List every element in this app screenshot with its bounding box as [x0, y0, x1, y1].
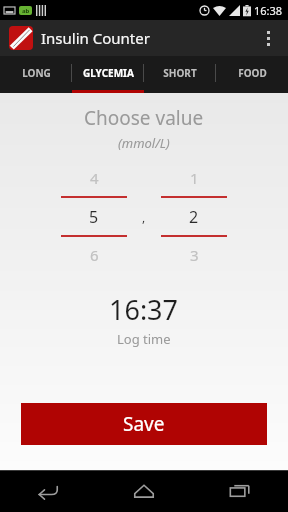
button[interactable]: More options: [254, 20, 282, 56]
button[interactable]: Recent apps: [192, 470, 288, 512]
staticText: ,: [142, 209, 146, 225]
staticText: 3: [190, 245, 199, 265]
staticText: 16:38: [254, 3, 283, 18]
staticText: 4: [90, 168, 99, 188]
staticText: ab: [22, 7, 30, 15]
staticText: Save: [123, 411, 165, 437]
staticText: LONG: [22, 66, 51, 80]
staticText: 5: [89, 206, 99, 228]
button[interactable]: SHORT: [144, 56, 216, 90]
button[interactable]: Home: [96, 470, 192, 512]
button[interactable]: FOOD: [216, 56, 288, 90]
button[interactable]: GLYCEMIA: [72, 56, 144, 90]
button[interactable]: LONG: [0, 56, 72, 90]
staticText: 16:37: [109, 291, 179, 328]
button[interactable]: 4: [61, 166, 127, 267]
staticText: SHORT: [163, 66, 197, 80]
staticText: FOOD: [238, 66, 267, 80]
staticText: (mmol/L): [118, 134, 170, 152]
button[interactable]: 16:37: [85, 289, 203, 350]
staticText: Choose value: [84, 105, 204, 131]
button[interactable]: 1: [161, 166, 227, 267]
staticText: Log time: [117, 330, 171, 348]
staticText: Insulin Counter: [41, 28, 150, 48]
staticText: 6: [90, 245, 99, 265]
button[interactable]: Back: [0, 470, 96, 512]
staticText: 2: [189, 206, 199, 228]
button[interactable]: Save: [21, 403, 267, 445]
staticText: 1: [190, 168, 199, 188]
staticText: GLYCEMIA: [83, 66, 134, 80]
